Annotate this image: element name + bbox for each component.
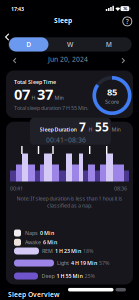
staticText: M [106, 40, 112, 49]
staticText: 55 [95, 119, 109, 135]
staticText: Awake [25, 239, 41, 246]
staticText: Min [54, 94, 63, 101]
staticText: Sleep Duration [39, 126, 76, 133]
staticText: 4 H 19 Min [71, 259, 97, 267]
staticText: 1 H 55 Min [56, 272, 82, 280]
staticText: 17:43 [11, 5, 24, 13]
button[interactable]: D [9, 37, 48, 51]
staticText: H [88, 126, 92, 133]
staticText: Score [105, 98, 119, 105]
staticText: Total Sleep Time [14, 78, 56, 86]
staticText: 76 [123, 6, 127, 11]
staticText: 0 Min [40, 229, 54, 237]
staticText: Min [111, 126, 120, 133]
button[interactable]: W [50, 37, 90, 51]
staticText: REM [42, 247, 53, 255]
staticText: 18% [83, 247, 93, 255]
staticText: Total sleep duration 7 H 55 Min. [14, 104, 88, 112]
staticText: classified as a nap. [47, 202, 92, 209]
button[interactable]: Help [121, 15, 133, 27]
staticText: Jun 20, 2024 [48, 55, 88, 64]
staticText: 6 Min [43, 239, 57, 246]
staticText: D [26, 40, 31, 49]
staticText: 00:41 [10, 185, 23, 192]
staticText: 00:41~08:36 [46, 136, 86, 144]
staticText: Note: If sleep duration is less than 1 h… [16, 195, 122, 202]
staticText: 57% [99, 259, 109, 267]
button[interactable]: Previous day [9, 57, 19, 64]
button[interactable]: M [89, 37, 129, 51]
button[interactable]: Next day [118, 57, 128, 64]
staticText: ? [126, 17, 129, 26]
staticText: 08:36 [114, 185, 127, 192]
staticText: 25% [84, 272, 94, 280]
staticText: Sleep Overview [8, 290, 60, 299]
staticText: Deep [41, 272, 54, 280]
staticText: H [31, 94, 35, 101]
staticText: W [67, 40, 73, 49]
staticText: 7 [79, 119, 86, 135]
staticText: Light [57, 259, 69, 267]
staticText: 1 H 23 Min [55, 247, 81, 255]
staticText: Sleep [54, 16, 72, 25]
staticText: 37 [37, 84, 53, 104]
staticText: 07 [14, 84, 30, 104]
staticText: 85 [107, 86, 117, 98]
staticText: Naps [25, 229, 38, 237]
